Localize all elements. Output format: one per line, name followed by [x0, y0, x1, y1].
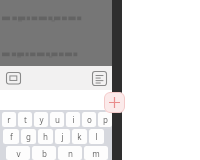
button[interactable]: k	[72, 129, 87, 144]
staticText: g	[26, 131, 31, 142]
staticText: k	[77, 131, 82, 142]
button[interactable]: h	[38, 129, 53, 144]
button[interactable]: u	[50, 112, 64, 127]
button[interactable]: m	[84, 146, 108, 160]
button[interactable]: p	[98, 112, 112, 127]
button[interactable]: o	[82, 112, 96, 127]
button[interactable]: Insert image	[2, 67, 24, 89]
button[interactable]: l	[89, 129, 104, 144]
button[interactable]: y	[34, 112, 48, 127]
button[interactable]: n	[58, 146, 82, 160]
button[interactable]: Add	[104, 92, 125, 113]
button[interactable]: f	[3, 129, 19, 144]
staticText: o	[87, 114, 92, 125]
staticText: y	[39, 114, 44, 125]
staticText: n	[68, 148, 73, 159]
staticText: v	[16, 148, 21, 159]
button[interactable]: v	[6, 146, 30, 160]
button[interactable]: g	[21, 129, 36, 144]
button[interactable]: b	[32, 146, 56, 160]
staticText: u	[55, 114, 60, 125]
button[interactable]: t	[18, 112, 32, 127]
staticText: i	[72, 114, 75, 125]
button[interactable]: r	[2, 112, 16, 127]
staticText: b	[42, 148, 47, 159]
staticText: p	[103, 114, 108, 125]
staticText: m	[92, 148, 100, 159]
staticText: r	[7, 114, 11, 125]
staticText: h	[43, 131, 48, 142]
button[interactable]: j	[55, 129, 70, 144]
staticText: t	[24, 114, 27, 125]
button[interactable]: Formatting options	[88, 67, 110, 89]
staticText: l	[95, 131, 98, 142]
staticText: f	[10, 131, 13, 142]
staticText: j	[61, 131, 64, 142]
button[interactable]: i	[66, 112, 80, 127]
